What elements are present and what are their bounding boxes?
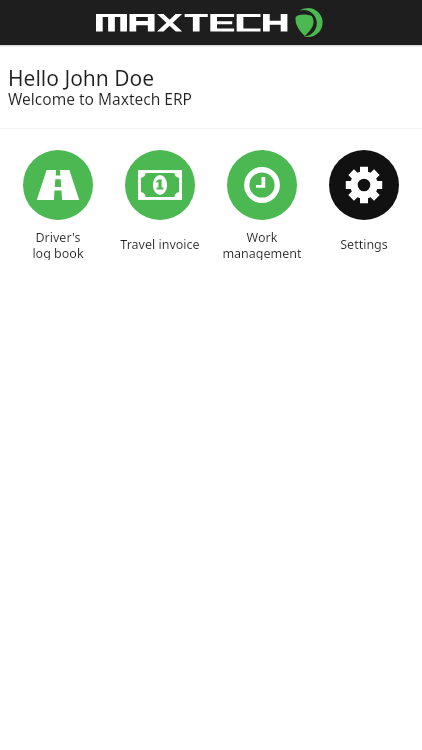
staticText: Hello John Doe [8, 64, 155, 93]
button[interactable]: Driver's log book [7, 150, 109, 260]
other: Settings [329, 150, 399, 220]
button[interactable]: Work management [211, 150, 313, 260]
other: Work management [227, 150, 297, 220]
other: Maxtech [0, 0, 422, 45]
other: Travel invoice [125, 150, 195, 220]
other: Driver's log book [23, 150, 93, 220]
staticText: Travel invoice [120, 236, 200, 253]
staticText: Welcome to Maxtech ERP [8, 88, 192, 109]
staticText: Driver's log book [32, 229, 84, 260]
button[interactable]: Travel invoice [109, 150, 211, 260]
button[interactable]: Settings [313, 150, 415, 260]
staticText: Work management [222, 229, 302, 260]
staticText: Settings [340, 236, 388, 253]
